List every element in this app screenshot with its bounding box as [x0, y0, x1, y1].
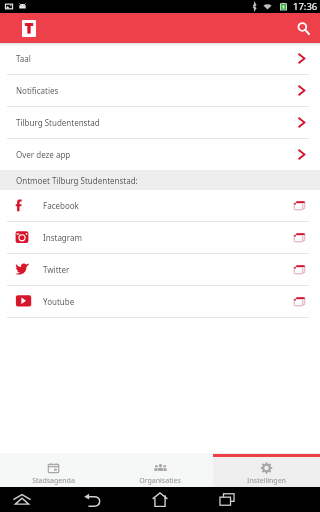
staticText: Youtube: [43, 296, 75, 307]
button[interactable]: Collapse: [6, 487, 38, 512]
staticText: Taal: [16, 53, 31, 64]
button[interactable]: Twitter: [0, 254, 320, 286]
button[interactable]: Youtube: [0, 286, 320, 318]
button[interactable]: Home: [144, 487, 176, 512]
staticText: Organisaties: [139, 476, 181, 486]
button[interactable]: Stadsagenda: [0, 453, 106, 487]
staticText: Stadsagenda: [32, 476, 75, 486]
staticText: Tilburg Studentenstad: [16, 117, 100, 128]
button[interactable]: Recents: [211, 487, 243, 512]
button[interactable]: Tilburg Studentenstad: [0, 107, 320, 139]
staticText: Over deze app: [16, 149, 71, 160]
staticText: 17:36: [293, 0, 318, 13]
staticText: Twitter: [43, 264, 70, 275]
button[interactable]: Organisaties: [106, 453, 213, 487]
button[interactable]: Instagram: [0, 222, 320, 254]
button[interactable]: App logo: [22, 20, 36, 37]
staticText: Facebook: [43, 200, 79, 211]
button[interactable]: Taal: [0, 43, 320, 75]
button[interactable]: Facebook: [0, 190, 320, 222]
button[interactable]: Over deze app: [0, 139, 320, 170]
staticText: Ontmoet Tilburg Studentenstad:: [16, 175, 138, 186]
staticText: Instellingen: [247, 476, 286, 486]
button[interactable]: Search: [291, 16, 315, 40]
button[interactable]: Back: [76, 487, 108, 512]
staticText: Notificaties: [16, 85, 59, 96]
staticText: Instagram: [43, 232, 82, 243]
button[interactable]: Notificaties: [0, 75, 320, 107]
button[interactable]: Instellingen: [213, 453, 320, 487]
